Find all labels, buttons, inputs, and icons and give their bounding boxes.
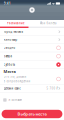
staticText: Мои билеты <box>39 21 56 25</box>
staticText: Места <box>3 69 15 74</box>
staticText: Город Москва <box>3 30 22 33</box>
staticText: Детский сеанс <box>3 87 20 90</box>
staticText: Выбрать места <box>17 111 46 117</box>
staticText: Сегодня <box>3 46 15 49</box>
staticText: 9:41 <box>4 2 11 5</box>
button[interactable]: Расписание <box>0 20 32 27</box>
button[interactable]: Сегодня <box>0 44 64 52</box>
staticText: 5 700 ₽ <box>46 87 58 90</box>
button[interactable]: Кинотеатр <box>0 36 64 44</box>
button[interactable]: Город Москва <box>0 28 64 36</box>
staticText: Завтра <box>3 54 11 58</box>
button[interactable]: Суббота <box>0 61 64 69</box>
staticText: в сопровождении <box>3 79 30 83</box>
staticText: Расписание <box>7 21 25 25</box>
button[interactable]: От 6 лет, детский <box>0 74 64 84</box>
button[interactable]: Я согласен <box>0 96 64 104</box>
button[interactable]: Завтра <box>0 52 64 61</box>
button[interactable]: Детский сеанс <box>0 84 64 93</box>
staticText: Кинотеатр <box>3 38 17 41</box>
button[interactable]: Выбрать места <box>2 110 62 118</box>
button[interactable]: Мои билеты <box>32 20 64 27</box>
staticText: Я согласен <box>8 98 22 102</box>
staticText: От 6 лет, детский <box>3 75 26 79</box>
staticText: Суббота <box>3 63 14 66</box>
